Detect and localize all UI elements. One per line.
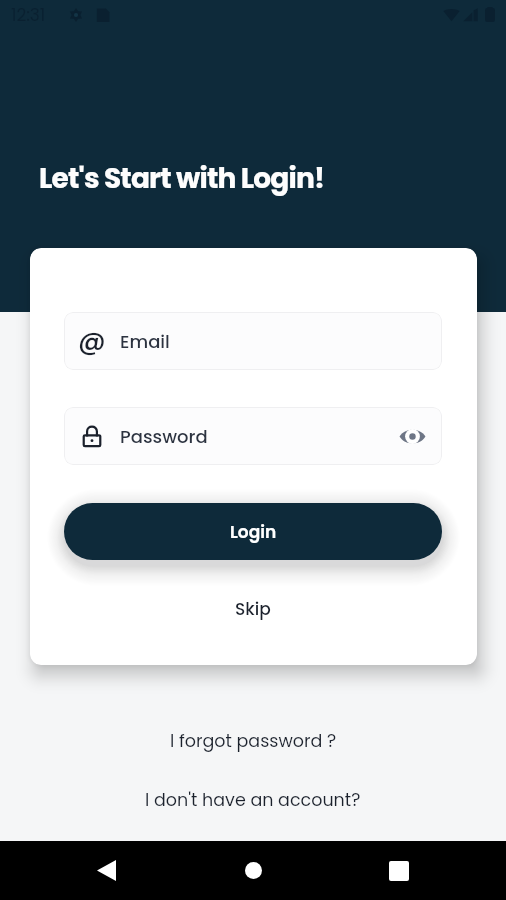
staticText: I don't have an account? — [145, 788, 361, 813]
staticText: @ — [78, 322, 106, 360]
button[interactable]: Show password — [396, 421, 428, 451]
staticText: Password — [120, 424, 208, 449]
button[interactable]: Skip — [64, 588, 442, 630]
button[interactable]: @ — [64, 312, 442, 370]
staticText: Login — [230, 520, 277, 544]
button[interactable]: I forgot password ? — [0, 722, 506, 760]
button[interactable]: Password — [64, 407, 442, 465]
button[interactable]: Home — [223, 841, 283, 900]
staticText: Skip — [235, 597, 271, 621]
button[interactable]: Recents — [369, 841, 429, 900]
staticText: I forgot password ? — [170, 729, 337, 754]
staticText: Email — [120, 329, 170, 354]
button[interactable]: Login — [64, 503, 442, 560]
button[interactable]: I don't have an account? — [0, 781, 506, 819]
staticText: Let's Start with Login! — [39, 159, 325, 198]
button[interactable]: Back — [76, 841, 136, 900]
